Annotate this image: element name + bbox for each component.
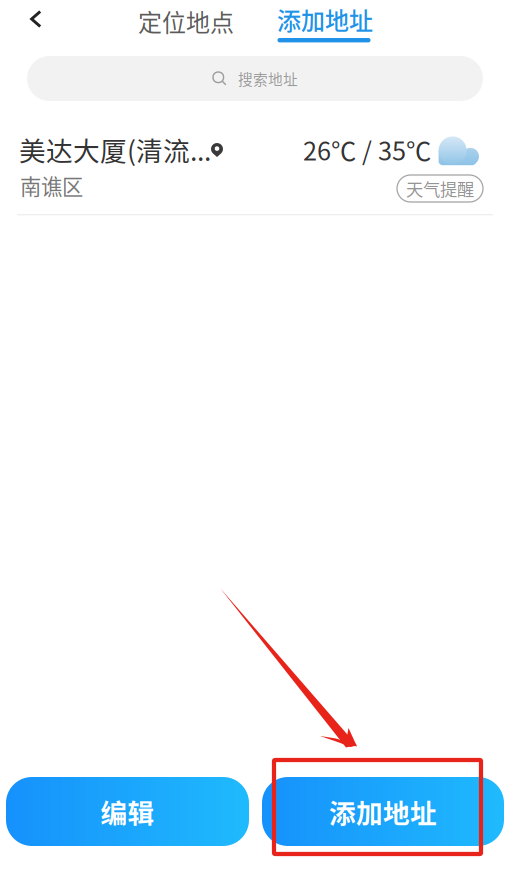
staticText: 添加地址 [277, 2, 373, 37]
button[interactable]: 搜索地址 [27, 56, 483, 101]
staticText: 26℃ / 35℃ [303, 131, 431, 168]
staticText: 美达大厦(清流... [19, 130, 211, 169]
staticText: 南谯区 [20, 170, 83, 201]
staticText: 编辑 [100, 792, 154, 831]
button[interactable]: 添加地址 [276, 0, 372, 46]
staticText: 搜索地址 [238, 68, 298, 89]
staticText: 添加地址 [329, 792, 437, 831]
button[interactable]: 美达大厦(清流... [0, 115, 514, 214]
button[interactable]: Back [14, 0, 58, 38]
button[interactable]: 添加地址 [262, 777, 504, 846]
button[interactable]: 编辑 [6, 777, 249, 846]
staticText: 定位地点 [138, 4, 234, 38]
staticText: 天气提醒 [406, 176, 474, 201]
button[interactable]: 定位地点 [138, 0, 234, 42]
